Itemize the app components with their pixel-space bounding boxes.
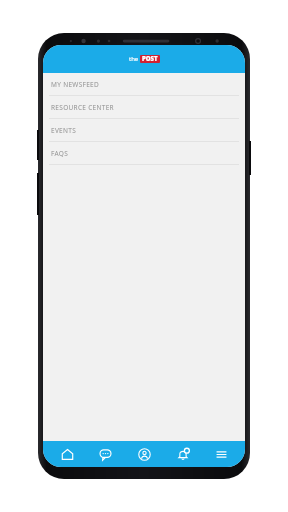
staticText: FAQS xyxy=(51,149,69,158)
button[interactable]: MY NEWSFEED xyxy=(43,73,245,96)
staticText: the xyxy=(129,55,139,63)
staticText: EVENTS xyxy=(51,126,77,135)
button[interactable]: Messages xyxy=(90,441,120,467)
staticText: POST xyxy=(142,55,158,63)
button[interactable]: FAQS xyxy=(43,142,245,165)
button[interactable]: Home xyxy=(52,441,82,467)
button[interactable]: Profile xyxy=(129,441,159,467)
button[interactable]: Menu xyxy=(206,441,236,467)
staticText: RESOURCE CENTER xyxy=(51,103,114,112)
button[interactable]: EVENTS xyxy=(43,119,245,142)
staticText: MY NEWSFEED xyxy=(51,80,100,89)
button[interactable]: RESOURCE CENTER xyxy=(43,96,245,119)
button[interactable]: Notifications xyxy=(168,441,198,467)
